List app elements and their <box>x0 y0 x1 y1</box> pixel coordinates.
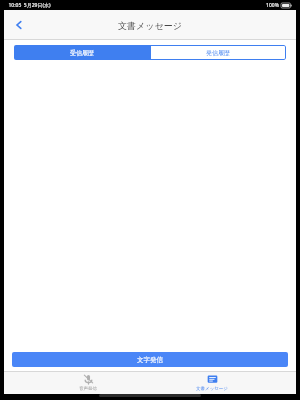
button[interactable]: 受信履歴 <box>14 45 150 60</box>
staticText: 発信履歴 <box>206 49 230 57</box>
staticText: 10:05 5月29日(水) <box>8 2 51 9</box>
button[interactable]: Text message <box>172 372 252 394</box>
staticText: 文書メッセージ <box>196 386 228 392</box>
staticText: 100% <box>266 2 279 9</box>
button[interactable]: Voice call <box>48 372 128 394</box>
staticText: 音声発信 <box>79 386 97 392</box>
staticText: 文書メッセージ <box>118 20 182 31</box>
staticText: 文字発信 <box>137 356 163 364</box>
button[interactable]: 文字発信 <box>12 352 288 367</box>
button[interactable]: 発信履歴 <box>150 45 286 60</box>
staticText: 受信履歴 <box>70 49 94 57</box>
button[interactable]: Back <box>6 12 32 38</box>
